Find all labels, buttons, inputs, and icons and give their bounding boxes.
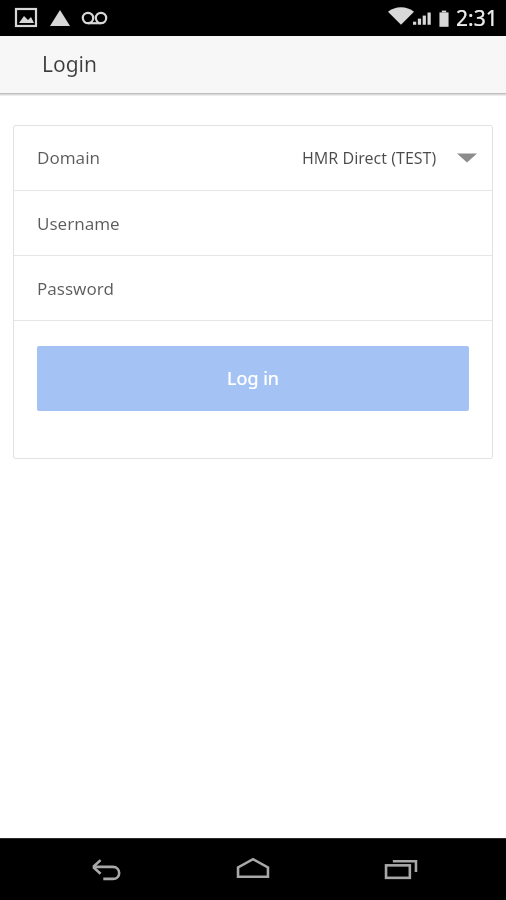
button[interactable]: Log in (37, 346, 469, 411)
staticText: Login (42, 50, 98, 79)
button[interactable]: Password (13, 256, 493, 320)
button[interactable]: Home (211, 838, 295, 900)
button[interactable]: Username (13, 191, 493, 255)
staticText: HMR Direct (TEST) (302, 147, 437, 169)
staticText: 2:31 (456, 4, 498, 33)
button[interactable]: Recent apps (359, 838, 443, 900)
staticText: Username (37, 212, 120, 235)
staticText: Domain (37, 146, 101, 169)
button[interactable]: Domain (13, 125, 493, 190)
staticText: Password (37, 277, 114, 300)
staticText: Log in (227, 366, 279, 391)
other: Select domain (457, 151, 477, 165)
button[interactable]: Back (64, 838, 148, 900)
